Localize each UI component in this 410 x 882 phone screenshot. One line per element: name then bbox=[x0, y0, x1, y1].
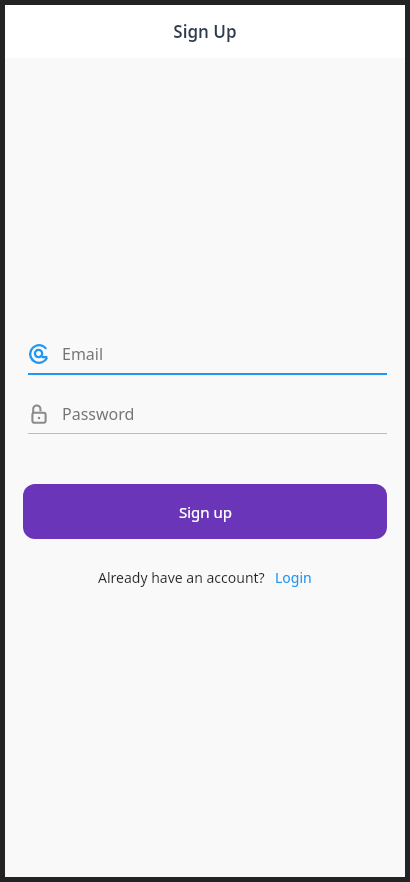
other: Email bbox=[28, 343, 50, 365]
staticText: Already have an account? bbox=[98, 568, 265, 587]
staticText: Email bbox=[62, 343, 104, 365]
staticText: Login bbox=[275, 568, 312, 587]
button[interactable]: Sign up bbox=[23, 484, 387, 539]
staticText: Sign Up bbox=[173, 20, 237, 43]
staticText: Sign up bbox=[179, 502, 232, 522]
button[interactable]: Login bbox=[275, 568, 312, 587]
button[interactable]: Password bbox=[23, 395, 387, 434]
other: Password bbox=[28, 403, 50, 425]
staticText: Password bbox=[62, 403, 135, 425]
button[interactable]: Email bbox=[23, 335, 387, 375]
